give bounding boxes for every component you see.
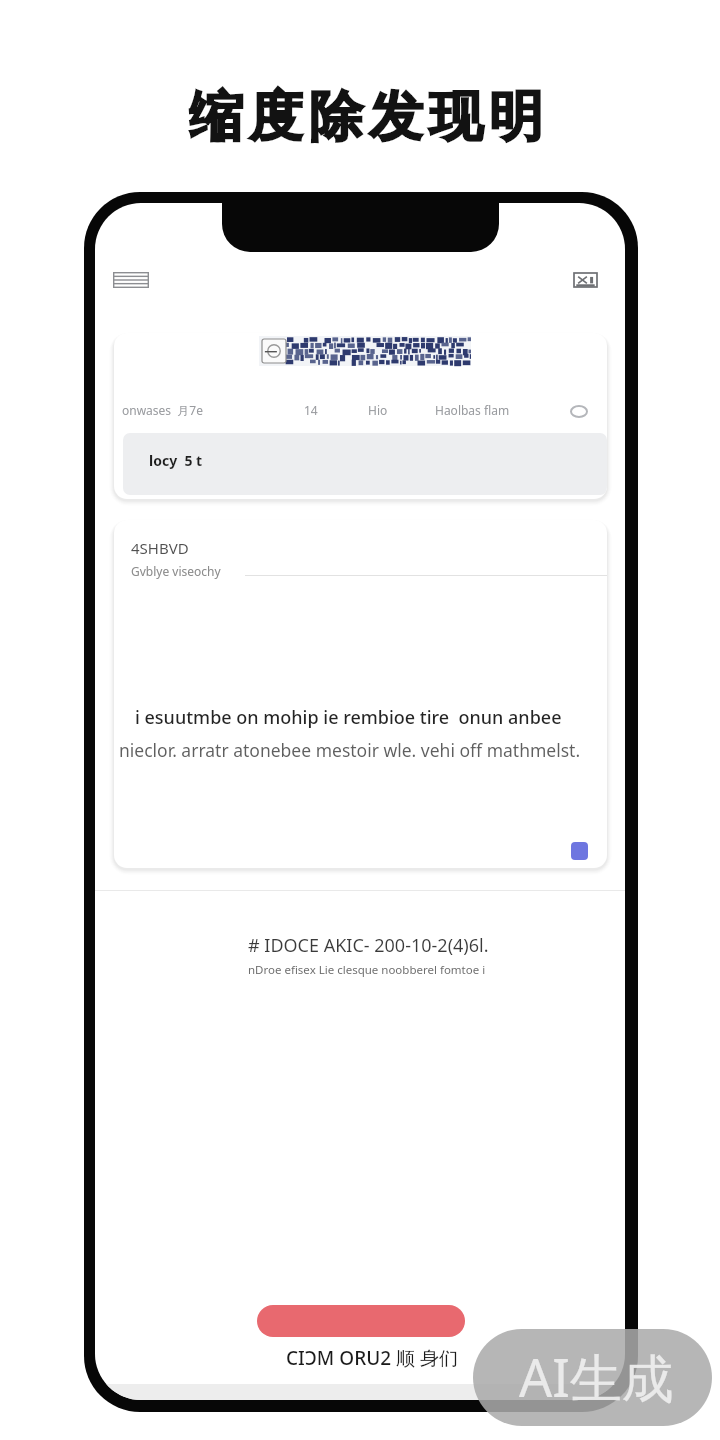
- button[interactable]: Image: [569, 267, 602, 293]
- staticText: nDroe efisex Lie clesque noobberel fomto…: [248, 962, 486, 978]
- button[interactable]: Bookmark: [571, 842, 588, 860]
- staticText: 缩度除发现明: [186, 83, 546, 149]
- staticText: 14: [304, 402, 318, 418]
- staticText: Hio: [368, 402, 388, 418]
- staticText: AI生成: [519, 1341, 674, 1412]
- button[interactable]: 4SHBVD: [114, 520, 607, 868]
- staticText: i esuutmbe on mohip ie rembioe tire onun…: [135, 705, 562, 730]
- staticText: Haolbas flam: [435, 402, 510, 418]
- staticText: CIƆM ORU2 顺 身们: [286, 1345, 458, 1371]
- button[interactable]: locy 5 t: [123, 433, 607, 495]
- staticText: nieclor. arratr atonebee mestoir wle. ve…: [119, 738, 581, 762]
- staticText: # IDOCE AKIC- 200-10-2(4)6l.: [248, 933, 489, 958]
- staticText: onwases 月7e: [122, 402, 203, 418]
- button[interactable]: Primary action: [257, 1305, 465, 1337]
- staticText: Gvblye viseochy: [131, 563, 221, 579]
- staticText: 4SHBVD: [131, 538, 189, 558]
- button[interactable]: onwases 月7e: [114, 333, 607, 499]
- staticText: locy 5 t: [149, 451, 203, 470]
- button[interactable]: Menu: [108, 266, 154, 294]
